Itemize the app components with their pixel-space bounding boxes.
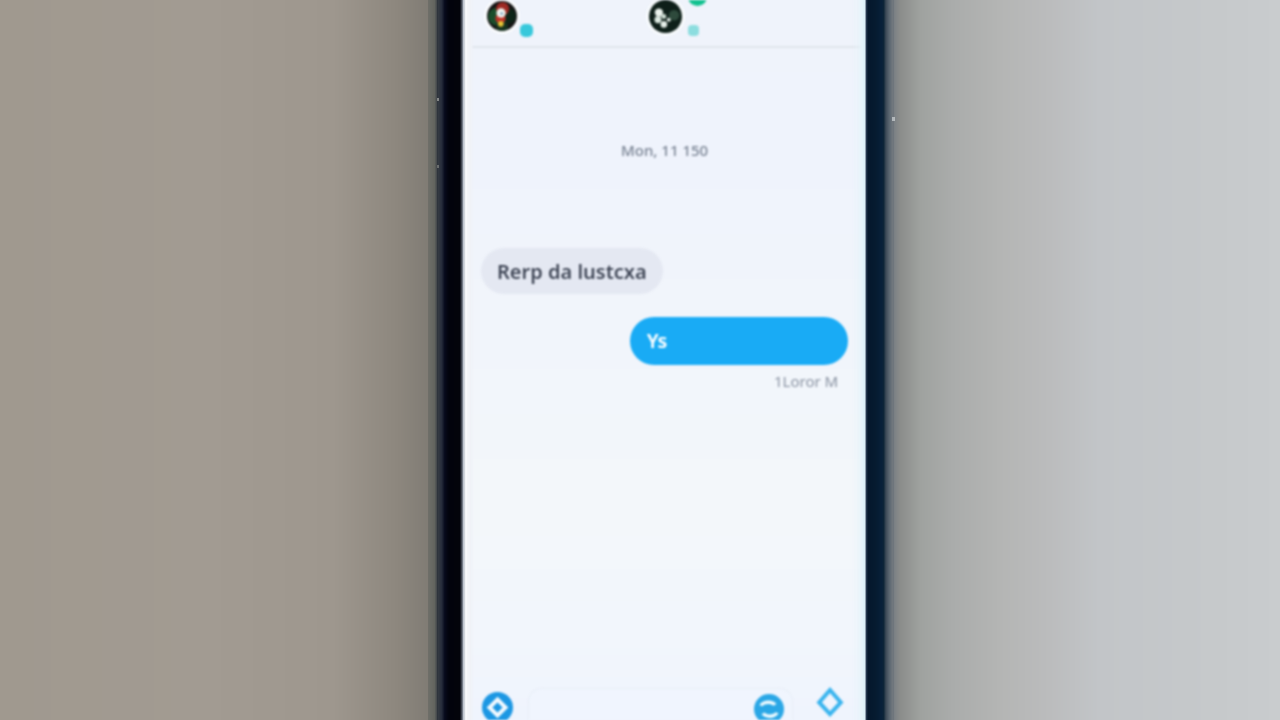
button[interactable]: Story xyxy=(487,1,517,31)
button[interactable]: Attach xyxy=(482,692,513,720)
button[interactable]: Story xyxy=(649,0,682,33)
button[interactable]: Rerp da lustcxa xyxy=(481,248,663,294)
button[interactable]: Emoji xyxy=(754,694,784,720)
button[interactable]: Ys xyxy=(630,317,848,365)
staticText: Mon, 11 150 xyxy=(621,140,709,160)
staticText: Rerp da lustcxa xyxy=(497,258,647,285)
staticText: Ys xyxy=(647,328,668,354)
button[interactable]: Send xyxy=(816,688,843,715)
button[interactable] xyxy=(528,688,793,720)
staticText: 1Loror M xyxy=(774,371,839,391)
